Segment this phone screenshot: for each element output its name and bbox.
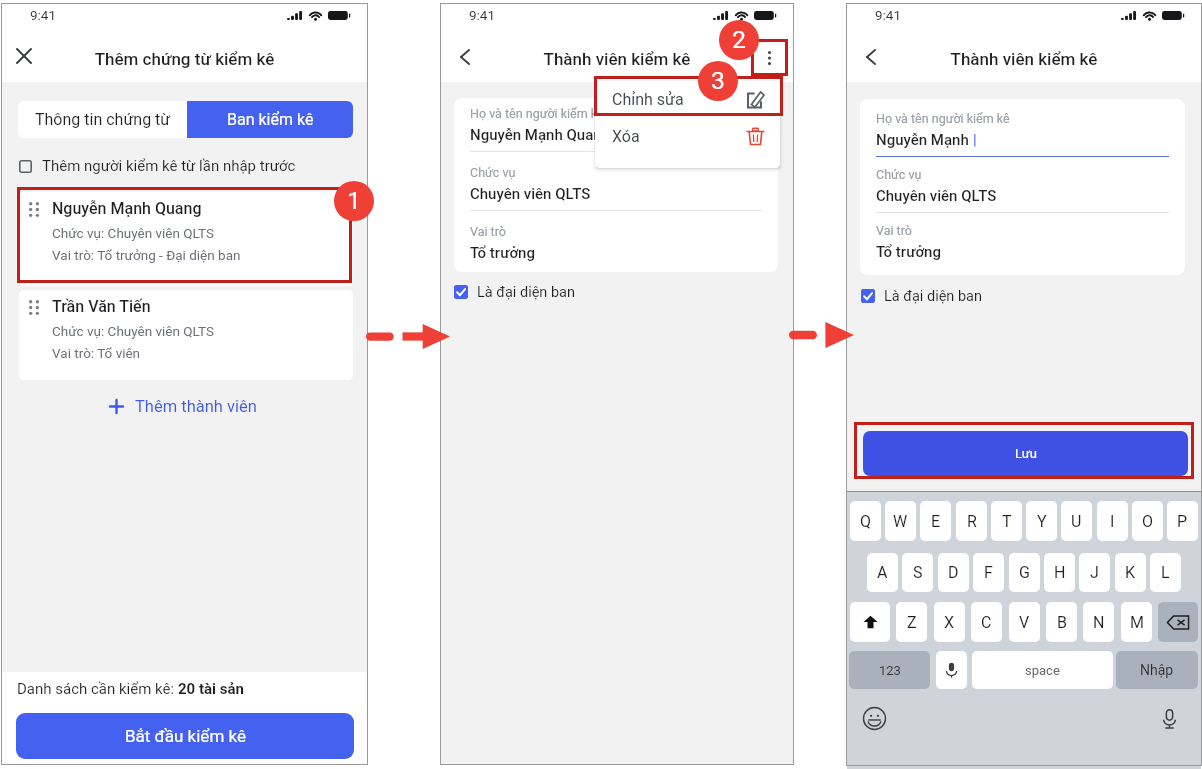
staticText: Vai trò: [876, 223, 912, 238]
staticText: Họ và tên người kiểm kê: [876, 111, 1010, 126]
staticText: R: [967, 512, 977, 531]
button[interactable]: S: [902, 553, 933, 592]
staticText: Họ và tên người kiểm kê: [470, 106, 604, 121]
staticText: Thêm thành viên: [135, 397, 257, 416]
staticText: Danh sách cần kiểm kê:: [17, 680, 178, 698]
staticText: Nguyễn Mạnh Quang: [52, 199, 202, 218]
button[interactable]: M: [1121, 602, 1152, 642]
staticText: Thêm chứng từ kiểm kê: [2, 49, 367, 69]
staticText: O: [1142, 512, 1154, 531]
staticText: L: [1161, 563, 1170, 582]
staticText: U: [1071, 512, 1082, 531]
staticText: C: [981, 613, 992, 632]
staticText: H: [1054, 563, 1066, 582]
staticText: Nguyễn Mạnh Quang: [470, 126, 611, 144]
staticText: B: [1057, 613, 1067, 632]
button[interactable]: T: [991, 501, 1022, 541]
staticText: Thêm người kiểm kê từ lần nhập trước: [42, 157, 296, 175]
staticText: 3: [711, 66, 725, 95]
button[interactable]: Nhập: [1116, 651, 1198, 689]
button[interactable]: 123: [849, 651, 930, 689]
button[interactable]: Lưu: [863, 431, 1188, 476]
staticText: Tổ trưởng: [470, 244, 535, 262]
button[interactable]: B: [1046, 602, 1077, 642]
staticText: Vai trò: Tổ trưởng - Đại diện ban: [52, 247, 241, 263]
button[interactable]: E: [920, 501, 951, 541]
button[interactable]: Back: [859, 45, 883, 69]
button[interactable]: Backspace: [1158, 602, 1198, 642]
staticText: S: [913, 563, 923, 582]
button[interactable]: U: [1061, 501, 1092, 541]
staticText: Nhập: [1140, 662, 1174, 678]
button[interactable]: More options: [756, 45, 782, 71]
staticText: Ban kiểm kê: [227, 110, 314, 129]
button[interactable]: V: [1009, 602, 1040, 642]
staticText: Vai trò: Tổ viên: [52, 345, 141, 361]
button[interactable]: Ban kiểm kê: [187, 101, 353, 138]
button[interactable]: A: [867, 553, 898, 592]
button[interactable]: Emoji: [862, 706, 887, 731]
button[interactable]: H: [1044, 553, 1075, 592]
button[interactable]: Y: [1026, 501, 1057, 541]
staticText: Bắt đầu kiểm kê: [125, 726, 246, 746]
button[interactable]: K: [1115, 553, 1146, 592]
button[interactable]: Là đại diện ban: [861, 286, 983, 306]
staticText: 9:41: [30, 7, 57, 23]
button[interactable]: J: [1079, 553, 1110, 592]
button[interactable]: Xóa: [612, 118, 765, 155]
staticText: 20 tài sản: [178, 680, 244, 698]
staticText: Y: [1037, 512, 1047, 531]
button[interactable]: Q: [850, 501, 881, 541]
staticText: W: [893, 512, 908, 531]
button[interactable]: D: [938, 553, 969, 592]
staticText: Thành viên kiểm kê: [441, 49, 793, 69]
staticText: space: [1025, 663, 1060, 678]
staticText: Thông tin chứng từ: [35, 110, 171, 129]
button[interactable]: G: [1009, 553, 1040, 592]
staticText: Tổ trưởng: [876, 243, 941, 261]
button[interactable]: Voice input: [936, 651, 967, 689]
button[interactable]: P: [1167, 501, 1198, 541]
button[interactable]: Thêm người kiểm kê từ lần nhập trước: [19, 155, 296, 177]
button[interactable]: F: [973, 553, 1004, 592]
button[interactable]: Voice: [1157, 706, 1182, 731]
staticText: Chuyên viên QLTS: [470, 185, 591, 203]
staticText: 9:41: [875, 7, 902, 23]
button[interactable]: L: [1150, 553, 1181, 592]
button[interactable]: I: [1097, 501, 1128, 541]
staticText: Xóa: [612, 127, 640, 146]
button[interactable]: O: [1132, 501, 1163, 541]
staticText: I: [1110, 512, 1115, 531]
button[interactable]: Chỉnh sửa: [612, 81, 765, 118]
staticText: Là đại diện ban: [477, 284, 576, 301]
button[interactable]: Back: [453, 45, 477, 69]
staticText: Lưu: [1015, 446, 1037, 461]
staticText: 1: [347, 186, 361, 215]
button[interactable]: Trần Văn Tiến: [19, 290, 353, 380]
staticText: 123: [879, 663, 901, 678]
button[interactable]: Bắt đầu kiểm kê: [16, 713, 354, 759]
button[interactable]: Z: [896, 602, 927, 642]
staticText: T: [1002, 512, 1012, 531]
button[interactable]: C: [971, 602, 1002, 642]
staticText: Vai trò: [470, 224, 506, 239]
button[interactable]: Thông tin chứng từ: [18, 101, 187, 138]
button[interactable]: N: [1083, 602, 1114, 642]
button[interactable]: Nguyễn Mạnh Quang: [19, 192, 353, 286]
staticText: P: [1177, 512, 1188, 531]
button[interactable]: space: [972, 651, 1113, 689]
staticText: Q: [860, 512, 872, 531]
button[interactable]: Là đại diện ban: [454, 282, 576, 302]
staticText: V: [1019, 613, 1030, 632]
staticText: G: [1019, 563, 1030, 582]
button[interactable]: Close: [11, 43, 37, 69]
button[interactable]: Thêm thành viên: [110, 396, 265, 417]
button[interactable]: Shift: [850, 602, 890, 642]
staticText: F: [984, 563, 993, 582]
staticText: Chức vụ: [470, 165, 516, 180]
staticText: Là đại diện ban: [884, 288, 983, 305]
button[interactable]: X: [934, 602, 965, 642]
staticText: Z: [907, 613, 917, 632]
button[interactable]: R: [956, 501, 987, 541]
button[interactable]: W: [885, 501, 916, 541]
